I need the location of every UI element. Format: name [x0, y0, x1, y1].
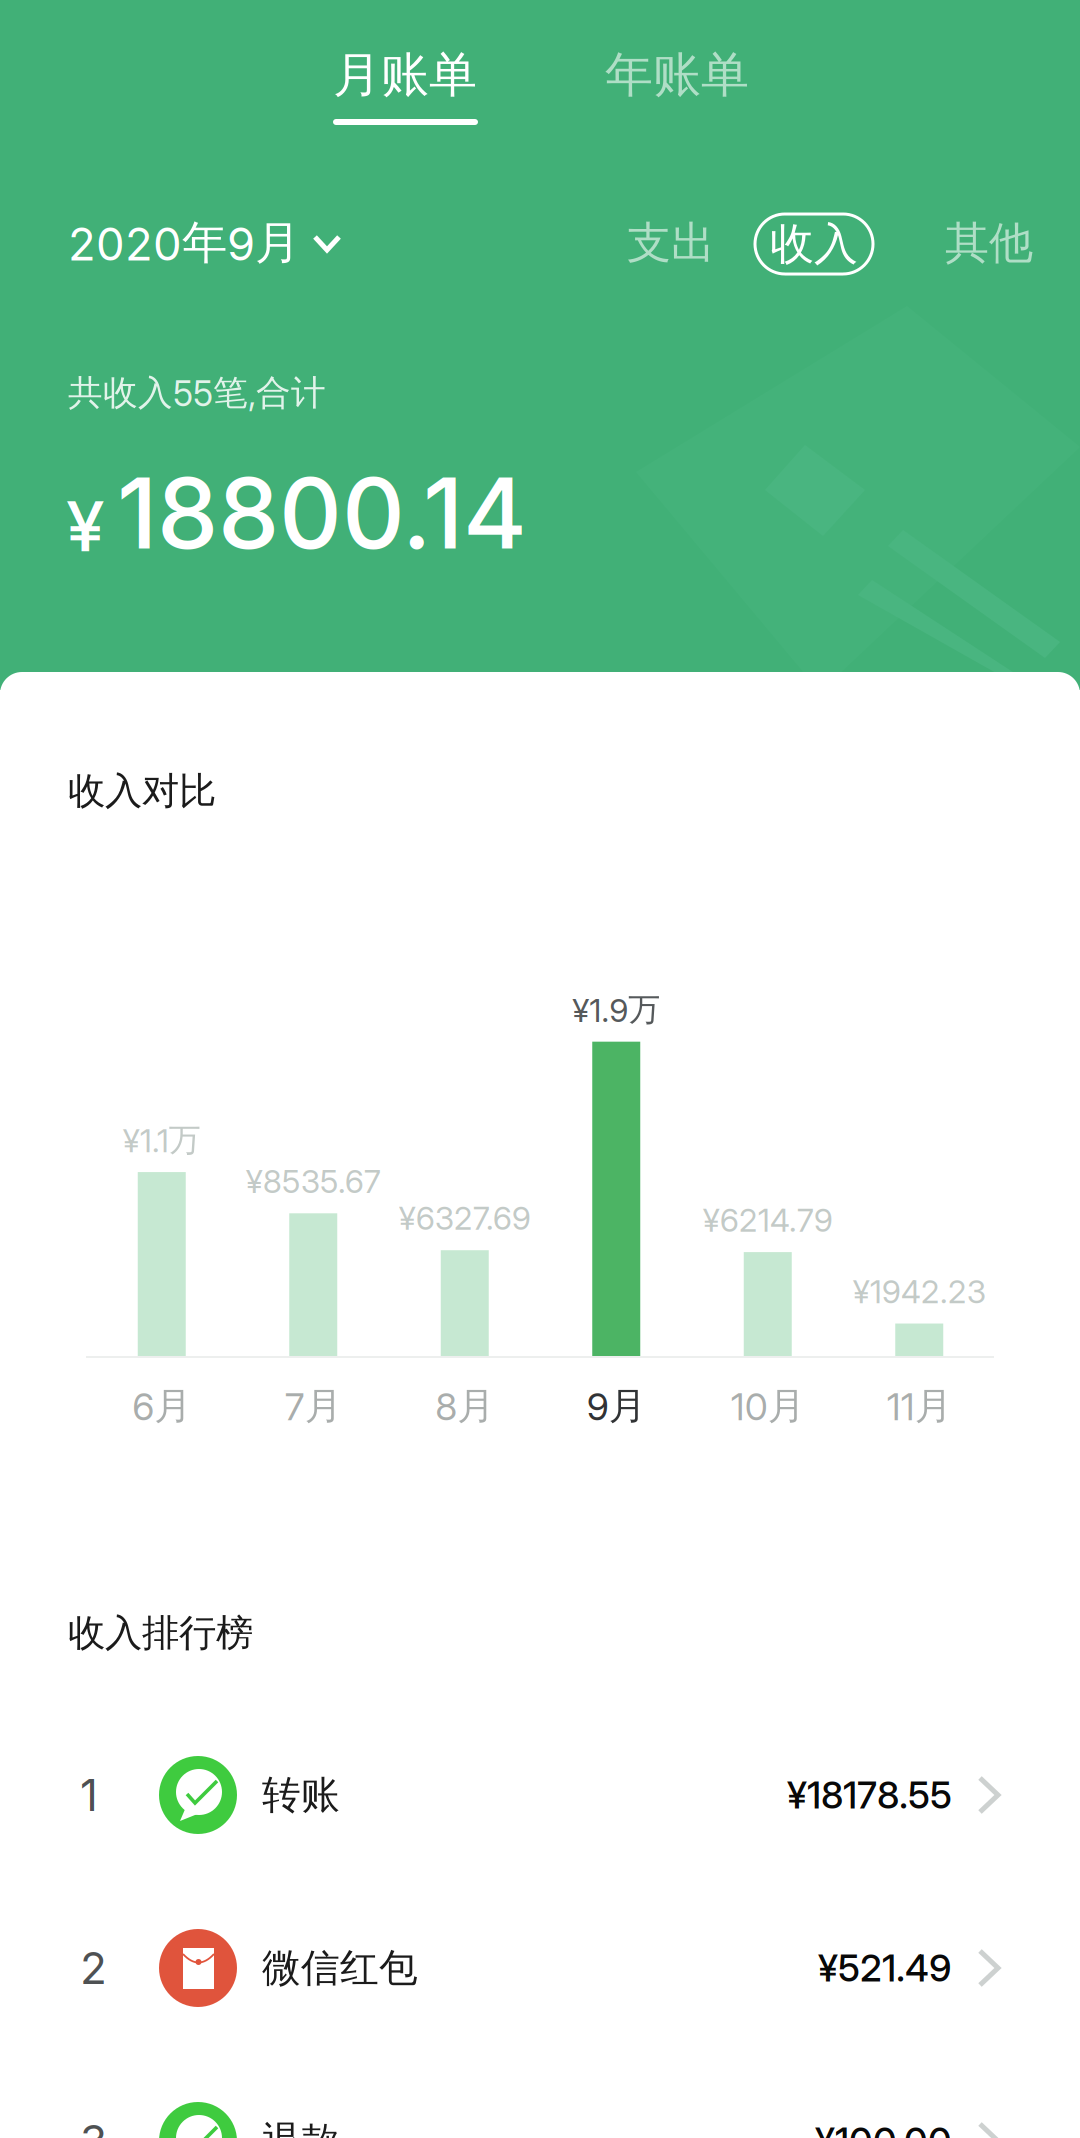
staticText: 11月	[887, 1382, 952, 1429]
staticText: 其他	[945, 215, 1033, 271]
staticText: 3	[80, 2114, 107, 2138]
staticText: 1	[80, 1768, 98, 1822]
staticText: ¥1.1万	[123, 1120, 201, 1160]
button[interactable]: 其他	[932, 210, 1046, 276]
staticText: 微信红包	[262, 1944, 418, 1992]
staticText: 支出	[627, 215, 715, 271]
staticText: 年账单	[605, 45, 749, 105]
button[interactable]: 支出	[614, 210, 728, 276]
button[interactable]: 收入	[755, 214, 873, 274]
staticText: ¥8535.67	[246, 1162, 381, 1201]
button[interactable]: 年账单	[577, 45, 777, 105]
staticText: 转账	[262, 1771, 340, 1819]
staticText: 7月	[285, 1382, 342, 1429]
staticText: ¥100.00	[815, 2118, 952, 2138]
button[interactable]: 1	[0, 0, 1080, 2138]
staticText: 收入对比	[68, 767, 216, 814]
staticText: ¥521.49	[818, 1945, 952, 1991]
button[interactable]: 2	[0, 0, 1080, 2138]
staticText: 收入	[770, 216, 858, 272]
staticText: ¥1.9万	[572, 989, 660, 1030]
staticText: 6月	[132, 1382, 191, 1429]
staticText: ¥6327.69	[399, 1199, 531, 1238]
staticText: 退款	[262, 2117, 340, 2138]
staticText: 10月	[731, 1382, 805, 1429]
staticText: 2	[80, 1941, 107, 1995]
staticText: 9月	[587, 1382, 646, 1429]
button[interactable]: 3	[0, 0, 1080, 2138]
staticText: 2020年9月	[68, 214, 300, 271]
staticText: ¥1942.23	[853, 1272, 986, 1311]
button[interactable]: 月账单	[305, 45, 505, 105]
staticText: ¥6214.79	[703, 1201, 833, 1239]
staticText: ¥18178.55	[787, 1772, 952, 1818]
staticText: 18800.14	[117, 454, 527, 572]
staticText: 收入排行榜	[68, 1609, 253, 1656]
staticText: 8月	[435, 1382, 494, 1429]
button[interactable]: 2020年9月	[50, 204, 488, 282]
staticText: 月账单	[333, 45, 477, 105]
staticText: 共收入55笔,合计	[68, 371, 326, 415]
staticText: ¥	[66, 484, 105, 568]
